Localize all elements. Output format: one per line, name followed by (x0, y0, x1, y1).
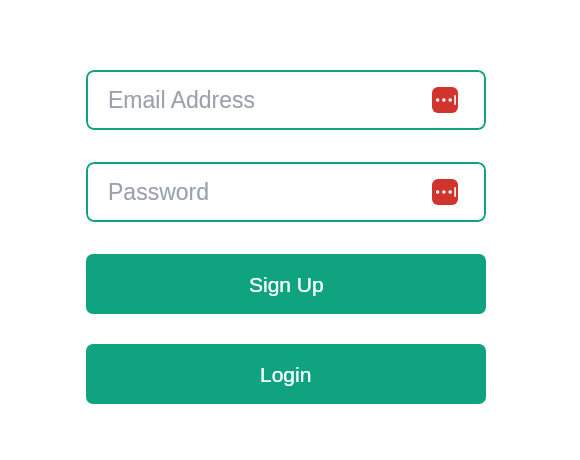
button[interactable]: Sign Up (86, 254, 486, 314)
staticText: Login (260, 363, 312, 386)
button[interactable]: Email Address (86, 70, 486, 130)
button[interactable]: Login (86, 344, 486, 404)
staticText: Password (108, 179, 209, 205)
staticText: Email Address (108, 87, 256, 113)
button[interactable]: Password (86, 162, 486, 222)
staticText: Sign Up (249, 273, 324, 296)
